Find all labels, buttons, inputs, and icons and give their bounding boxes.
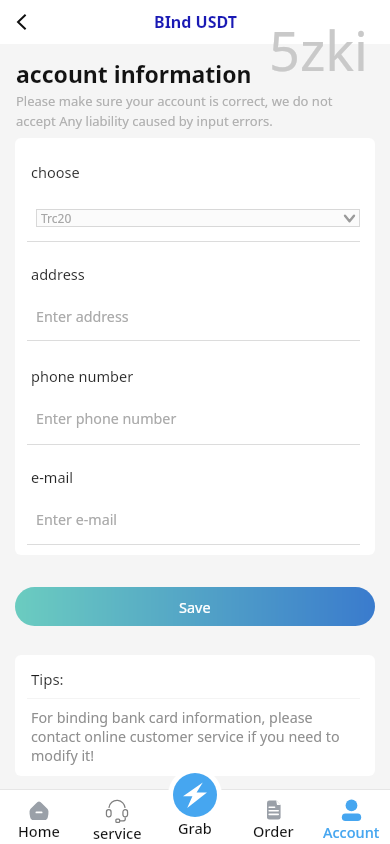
staticText: choose [31,162,80,182]
button[interactable]: Grab [173,773,217,817]
button[interactable]: Home [0,789,78,844]
staticText: e-mail [31,467,74,487]
button[interactable]: Enter phone number [36,405,360,431]
button[interactable]: service [78,789,156,844]
button[interactable]: Account [312,789,390,844]
staticText: account information [16,58,252,89]
staticText: Save [179,597,211,617]
button[interactable]: Save [15,587,375,626]
staticText: BInd USDT [154,11,237,33]
staticText: address [31,264,85,284]
staticText: Account [323,822,380,842]
button[interactable]: Back [0,0,44,44]
staticText: phone number [31,366,134,386]
staticText: For binding bank card information, pleas… [31,708,367,765]
staticText: 5zki [269,13,369,87]
button[interactable]: Order [234,789,312,844]
staticText: Trc20 [41,210,72,226]
staticText: Enter e-mail [36,510,118,529]
staticText: Enter address [36,307,129,326]
staticText: Tips: [31,669,64,689]
staticText: Grab [178,818,212,838]
staticText: Order [253,821,294,841]
button[interactable]: Enter e-mail [36,506,360,532]
button[interactable]: Enter address [36,303,360,329]
staticText: Home [18,821,60,841]
staticText: service [93,823,142,843]
staticText: Please make sure your account is correct… [16,92,333,130]
button[interactable]: Trc20 [36,209,360,227]
staticText: Enter phone number [36,409,177,428]
